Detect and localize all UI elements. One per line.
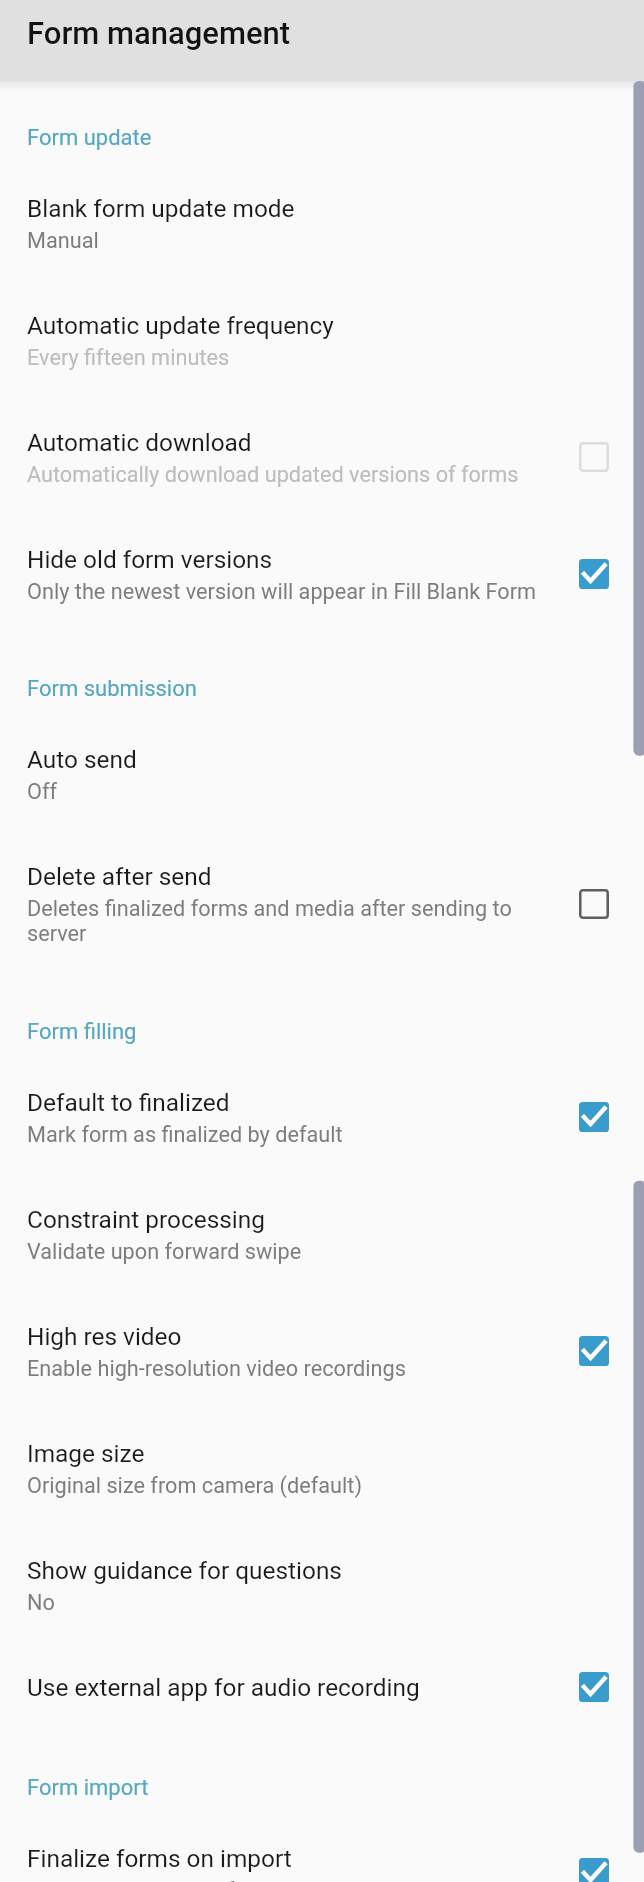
button[interactable]	[0, 513, 644, 631]
staticText: Auto send	[27, 745, 137, 774]
staticText: High res video	[27, 1322, 182, 1351]
staticText: Use external app for audio recording	[27, 1673, 420, 1702]
staticText: Original size from camera (default)	[27, 1473, 362, 1498]
button[interactable]: Checked	[579, 559, 609, 589]
button[interactable]	[0, 1407, 644, 1525]
staticText: Validate upon forward swipe	[27, 1239, 302, 1264]
staticText: Delete after send	[27, 862, 212, 891]
staticText: Default to finalized	[27, 1088, 230, 1117]
staticText: Off	[27, 779, 58, 804]
staticText: Every fifteen minutes	[27, 345, 230, 370]
button[interactable]	[0, 713, 644, 831]
button[interactable]	[0, 396, 644, 514]
staticText: Mark form as finalized by default	[27, 1122, 343, 1147]
staticText: Form update	[27, 125, 152, 151]
staticText: Automatically download updated versions …	[27, 462, 519, 487]
button[interactable]: Unchecked	[579, 442, 609, 472]
button[interactable]	[0, 1812, 644, 1882]
staticText: Automatic update frequency	[27, 311, 334, 340]
button[interactable]	[0, 1524, 644, 1642]
staticText: Show guidance for questions	[27, 1556, 342, 1585]
button[interactable]	[0, 1641, 644, 1734]
button[interactable]	[0, 162, 644, 280]
button[interactable]	[0, 1056, 644, 1174]
button[interactable]: Unchecked	[579, 889, 609, 919]
button[interactable]: Checked	[579, 1858, 609, 1882]
staticText: Only the newest version will appear in F…	[27, 579, 537, 604]
staticText: Automatic download	[27, 428, 252, 457]
staticText: Enable high-resolution video recordings	[27, 1356, 406, 1381]
button[interactable]: Checked	[579, 1102, 609, 1132]
staticText: Image size	[27, 1439, 145, 1468]
button[interactable]	[0, 1290, 644, 1408]
staticText: Form management	[27, 15, 291, 51]
button[interactable]	[0, 830, 644, 973]
button[interactable]	[0, 279, 644, 397]
staticText: Finalize forms on import	[27, 1844, 292, 1873]
staticText: Manual	[27, 228, 99, 253]
staticText: Constraint processing	[27, 1205, 265, 1234]
staticText: Finalize all imported forms	[27, 1878, 285, 1882]
staticText: Form import	[27, 1775, 149, 1801]
button[interactable]: Checked	[579, 1336, 609, 1366]
staticText: Form submission	[27, 676, 197, 702]
button[interactable]	[0, 1173, 644, 1291]
staticText: Blank form update mode	[27, 194, 295, 223]
staticText: Form filling	[27, 1019, 137, 1045]
staticText: Deletes finalized forms and media after …	[27, 896, 527, 946]
staticText: No	[27, 1590, 55, 1615]
staticText: Hide old form versions	[27, 545, 273, 574]
button[interactable]: Checked	[579, 1672, 609, 1702]
